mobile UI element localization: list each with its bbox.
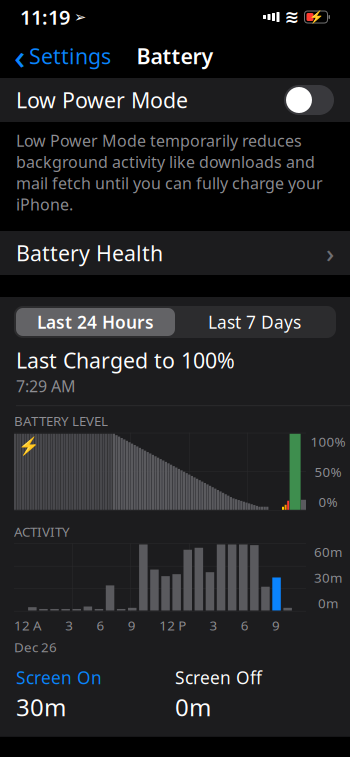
staticText: Last 7 Days (208, 310, 301, 333)
staticText: Screen Off (175, 666, 262, 689)
staticText: › (326, 236, 334, 270)
staticText: Screen On (16, 666, 102, 689)
staticText: 100% (310, 433, 345, 450)
staticText: ➢ (74, 9, 86, 25)
staticText: BATTERY LEVEL (14, 412, 108, 430)
staticText: Low Power Mode (16, 86, 188, 114)
staticText: 3 (65, 616, 73, 634)
button[interactable]: Last 7 Days (175, 308, 334, 336)
staticText: 50% (314, 463, 341, 481)
staticText: 11:19 (20, 4, 70, 30)
staticText: 30m (314, 569, 342, 586)
staticText: 30m (16, 691, 66, 723)
staticText: 6 (241, 616, 249, 634)
staticText: Battery Health (16, 239, 163, 267)
staticText: 12 A (14, 616, 42, 634)
staticText: 9 (128, 616, 136, 634)
staticText: ‹ (14, 33, 25, 79)
staticText: Settings (29, 42, 111, 70)
staticText: ⚡ (18, 436, 40, 456)
staticText: Last Charged to 100% (16, 346, 235, 374)
button[interactable]: Battery Health (0, 231, 350, 275)
staticText: ⚡ (308, 10, 323, 24)
staticText: 6 (97, 616, 105, 634)
staticText: Battery (136, 42, 213, 70)
staticText: Dec 26 (14, 638, 57, 656)
staticText: 60m (314, 543, 342, 561)
button[interactable]: ‹ (4, 29, 121, 83)
staticText: ≋ (284, 7, 299, 27)
button[interactable]: Last 24 Hours (16, 308, 175, 336)
staticText: ACTIVITY (14, 523, 70, 540)
staticText: 0% (318, 493, 337, 511)
staticText: 0m (318, 594, 338, 612)
staticText: 7:29 AM (16, 375, 76, 396)
staticText: 9 (272, 616, 280, 634)
staticText: 0m (175, 691, 211, 723)
staticText: 12 P (159, 616, 186, 634)
button[interactable]: Low Power Mode (0, 78, 350, 122)
staticText: Last 24 Hours (37, 310, 154, 333)
staticText: 3 (209, 616, 217, 634)
staticText: Low Power Mode temporarily reduces backg… (16, 130, 323, 215)
